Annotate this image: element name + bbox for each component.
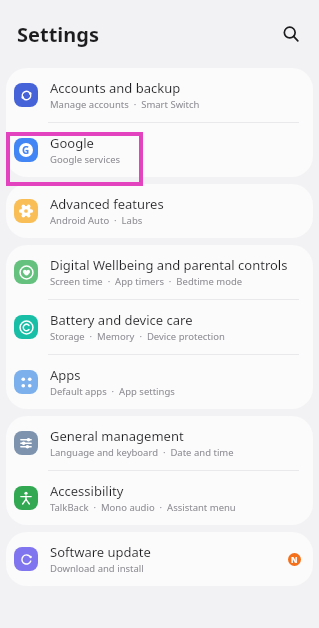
button[interactable]: General management <box>6 416 313 470</box>
button[interactable]: Battery and device care <box>6 300 313 354</box>
staticText: Screen time · App timers · Bedtime mode <box>50 275 243 288</box>
button[interactable]: Search <box>273 16 309 52</box>
staticText: Battery and device care <box>50 311 193 329</box>
staticText: Accounts and backup <box>50 79 181 97</box>
staticText: Google services <box>50 153 121 166</box>
staticText: Manage accounts · Smart Switch <box>50 98 200 111</box>
staticText: Storage · Memory · Device protection <box>50 330 225 343</box>
button[interactable]: Apps <box>6 355 313 409</box>
staticText: TalkBack · Mono audio · Assistant menu <box>50 501 236 514</box>
staticText: Download and install <box>50 562 144 575</box>
button[interactable]: Digital Wellbeing and parental controls <box>6 245 313 299</box>
button[interactable]: Advanced features <box>6 184 313 238</box>
staticText: Digital Wellbeing and parental controls <box>50 256 288 274</box>
staticText: Accessibility <box>50 482 124 500</box>
staticText: Advanced features <box>50 195 164 213</box>
staticText: Android Auto · Labs <box>50 214 143 227</box>
staticText: N <box>291 554 298 565</box>
staticText: Default apps · App settings <box>50 385 175 398</box>
button[interactable]: Accessibility <box>6 471 313 525</box>
staticText: General management <box>50 427 184 445</box>
staticText: Apps <box>50 366 81 384</box>
staticText: Google <box>50 134 94 152</box>
staticText: Settings <box>17 21 99 48</box>
button[interactable]: Software update <box>6 532 313 586</box>
staticText: Language and keyboard · Date and time <box>50 446 234 459</box>
button[interactable]: G <box>6 123 313 177</box>
staticText: G <box>22 143 30 157</box>
staticText: Software update <box>50 543 151 561</box>
button[interactable]: Accounts and backup <box>6 68 313 122</box>
